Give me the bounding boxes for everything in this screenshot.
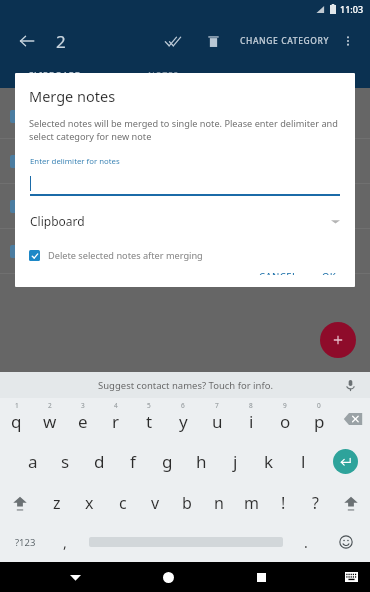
button[interactable]: 7: [200, 398, 234, 440]
button[interactable]: z: [40, 482, 73, 524]
button[interactable]: 8: [234, 398, 268, 440]
button[interactable]: Back: [60, 562, 90, 592]
button[interactable]: a: [16, 440, 49, 482]
staticText: 11:03: [340, 3, 364, 15]
button[interactable]: j: [218, 440, 252, 482]
button[interactable]: Shift: [0, 482, 40, 524]
button[interactable]: NOTES: [109, 64, 218, 88]
staticText: l: [301, 450, 306, 473]
staticText: r: [112, 410, 120, 433]
button[interactable]: CLIPBOARD: [0, 64, 109, 88]
button[interactable]: [80, 524, 291, 560]
staticText: b: [182, 492, 192, 514]
staticText: z: [53, 492, 61, 514]
staticText: w: [43, 410, 57, 433]
staticText: .: [304, 533, 308, 552]
staticText: 0: [317, 401, 321, 410]
button[interactable]: [30, 174, 340, 196]
button[interactable]: c: [106, 482, 139, 524]
button[interactable]: 0: [302, 398, 336, 440]
button[interactable]: 4: [99, 398, 132, 440]
button[interactable]: l: [286, 440, 320, 482]
button[interactable]: Emoji: [321, 524, 370, 560]
button[interactable]: 3: [66, 398, 99, 440]
button[interactable]: s: [49, 440, 82, 482]
staticText: !: [281, 492, 286, 514]
button[interactable]: Suggest contact names? Touch for info.: [0, 372, 370, 398]
button[interactable]: Home: [153, 562, 183, 592]
staticText: 7: [215, 401, 219, 410]
button[interactable]: !: [267, 482, 299, 524]
staticText: CANCEL: [259, 270, 298, 275]
staticText: c: [119, 492, 127, 514]
button[interactable]: Voice input: [340, 375, 360, 395]
button[interactable]: [0, 94, 370, 138]
button[interactable]: n: [203, 482, 235, 524]
staticText: 3: [81, 401, 85, 410]
staticText: f: [130, 450, 136, 473]
button[interactable]: 2: [33, 398, 66, 440]
button[interactable]: k: [252, 440, 286, 482]
button[interactable]: Delete selected notes after merging: [15, 247, 217, 264]
button[interactable]: Select all: [156, 24, 190, 58]
button[interactable]: OK: [314, 264, 345, 281]
button[interactable]: b: [171, 482, 203, 524]
staticText: 9: [283, 401, 287, 410]
button[interactable]: f: [116, 440, 150, 482]
button[interactable]: More options: [334, 27, 362, 55]
staticText: NOTES: [148, 70, 179, 82]
button[interactable]: 9: [268, 398, 302, 440]
button[interactable]: ,: [50, 524, 80, 560]
button[interactable]: [0, 229, 370, 273]
button[interactable]: ?123: [0, 524, 50, 560]
button[interactable]: x: [73, 482, 106, 524]
button[interactable]: 6: [166, 398, 200, 440]
staticText: Merge notes: [29, 86, 116, 106]
button[interactable]: Shift: [331, 482, 370, 524]
button[interactable]: Back: [8, 22, 46, 60]
button[interactable]: [0, 139, 370, 183]
staticText: i: [249, 410, 254, 433]
button[interactable]: .: [291, 524, 321, 560]
button[interactable]: Enter: [320, 440, 370, 482]
button[interactable]: Add: [320, 322, 356, 358]
staticText: y: [179, 410, 188, 433]
staticText: Delete selected notes after merging: [48, 249, 203, 262]
staticText: Enter delimiter for notes: [30, 156, 120, 167]
staticText: t: [146, 410, 153, 433]
staticText: k: [264, 450, 274, 473]
button[interactable]: 5: [132, 398, 166, 440]
button[interactable]: ?: [299, 482, 331, 524]
button[interactable]: d: [82, 440, 116, 482]
staticText: p: [314, 410, 325, 433]
staticText: a: [28, 450, 38, 473]
staticText: ?123: [15, 536, 36, 549]
button[interactable]: CANCEL: [251, 264, 306, 281]
button[interactable]: h: [184, 440, 218, 482]
button[interactable]: 1: [0, 398, 33, 440]
button[interactable]: Delete: [196, 24, 230, 58]
button[interactable]: m: [235, 482, 267, 524]
staticText: 6: [181, 401, 185, 410]
staticText: 2: [48, 401, 52, 410]
staticText: 8: [249, 401, 253, 410]
staticText: 4: [114, 401, 118, 410]
staticText: g: [162, 450, 173, 473]
staticText: j: [233, 450, 238, 473]
staticText: s: [61, 450, 70, 473]
button[interactable]: CHANGE CATEGORY: [236, 29, 334, 53]
button[interactable]: [0, 184, 370, 228]
button[interactable]: Clipboard: [15, 211, 355, 231]
staticText: 1: [15, 401, 19, 410]
staticText: q: [11, 410, 22, 433]
button[interactable]: Recents: [246, 562, 276, 592]
staticText: CHANGE CATEGORY: [240, 35, 330, 47]
button[interactable]: v: [139, 482, 171, 524]
staticText: x: [85, 492, 94, 514]
button[interactable]: g: [150, 440, 184, 482]
button[interactable]: Backspace: [336, 398, 370, 440]
button[interactable]: Switch keyboard: [336, 562, 366, 592]
staticText: ,: [63, 533, 67, 552]
staticText: n: [214, 492, 224, 514]
staticText: ?: [312, 492, 319, 514]
